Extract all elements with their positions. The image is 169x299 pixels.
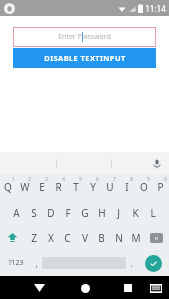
staticText: I [125, 180, 129, 194]
staticText: H [98, 206, 106, 220]
button[interactable]: O [135, 174, 152, 200]
button[interactable]: Y [84, 174, 101, 200]
button[interactable]: Back [29, 278, 49, 298]
button[interactable]: D [42, 200, 59, 225]
staticText: D [47, 206, 55, 220]
button[interactable]: DISABLE TEXTINPUT [13, 48, 156, 68]
staticText: 1 [12, 176, 15, 182]
staticText: J [117, 206, 120, 220]
staticText: R [55, 180, 62, 194]
button[interactable]: N [110, 225, 127, 250]
staticText: K [132, 206, 139, 220]
staticText: 9 [147, 176, 150, 182]
button[interactable]: C [59, 225, 76, 250]
staticText: Enter P [58, 32, 82, 42]
staticText: 5 [79, 176, 82, 182]
button[interactable]: J [110, 200, 127, 225]
button[interactable]: Recents [118, 278, 138, 298]
staticText: , [35, 258, 38, 269]
staticText: 8 [130, 176, 133, 182]
button[interactable]: ?123 [0, 250, 31, 276]
staticText: Z [31, 231, 37, 245]
button[interactable]: T [67, 174, 84, 200]
button[interactable]: I [118, 174, 135, 200]
staticText: 4 [62, 176, 65, 182]
button[interactable]: U [101, 174, 118, 200]
staticText: 0 [164, 176, 167, 182]
staticText: O [140, 180, 148, 194]
staticText: DISABLE TEXTINPUT [44, 53, 126, 63]
staticText: 6 [96, 176, 99, 182]
button[interactable]: F [59, 200, 76, 225]
button[interactable]: E [33, 174, 50, 200]
button[interactable]: Shift [0, 225, 25, 250]
staticText: G [81, 206, 89, 220]
staticText: C [64, 231, 71, 245]
staticText: 3 [45, 176, 48, 182]
staticText: T [73, 180, 79, 194]
staticText: B [98, 231, 105, 245]
staticText: 7 [113, 176, 116, 182]
button[interactable]: A [8, 200, 25, 225]
button[interactable]: Q [0, 174, 16, 200]
button[interactable]: K [127, 200, 144, 225]
button[interactable]: P [152, 174, 169, 200]
button[interactable]: Home [75, 278, 95, 298]
button[interactable]: B [93, 225, 110, 250]
button[interactable]: M [127, 225, 144, 250]
button[interactable]: Switch keyboard [147, 279, 165, 297]
button[interactable]: Enter P [13, 27, 156, 47]
button[interactable]: L [144, 200, 161, 225]
button[interactable]: Voice input [149, 156, 164, 171]
staticText: V [82, 231, 88, 245]
staticText: W [20, 180, 30, 194]
staticText: N [115, 231, 123, 245]
button[interactable]: S [25, 200, 42, 225]
staticText: M [131, 231, 141, 245]
button[interactable]: W [16, 174, 33, 200]
button[interactable]: . [126, 250, 137, 276]
staticText: ?123 [8, 258, 24, 268]
staticText: assword [83, 32, 111, 42]
button[interactable]: Done [137, 250, 169, 276]
staticText: S [31, 206, 37, 220]
staticText: . [130, 258, 133, 269]
staticText: L [150, 206, 156, 220]
staticText: A [13, 206, 20, 220]
staticText: 2 [28, 176, 31, 182]
button[interactable]: Backspace [144, 225, 169, 250]
staticText: P [157, 180, 164, 194]
staticText: E [39, 180, 45, 194]
staticText: X [48, 231, 54, 245]
button[interactable]: G [76, 200, 93, 225]
button[interactable]: , [31, 250, 42, 276]
button[interactable]: V [76, 225, 93, 250]
staticText: Q [4, 180, 12, 194]
button[interactable]: R [50, 174, 67, 200]
staticText: F [65, 206, 71, 220]
staticText: U [106, 180, 114, 194]
button[interactable]: X [42, 225, 59, 250]
button[interactable]: Z [25, 225, 42, 250]
staticText: Y [90, 180, 96, 194]
button[interactable]: H [93, 200, 110, 225]
staticText: 11:14 [145, 3, 166, 14]
